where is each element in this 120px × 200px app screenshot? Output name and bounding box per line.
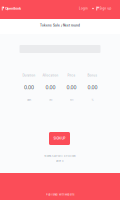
staticText: Tokens Sale / Next round — [40, 24, 80, 27]
staticText: % — [91, 99, 93, 101]
staticText: tkn — [49, 99, 52, 101]
staticText: SIGN UP — [53, 137, 65, 140]
button[interactable]: Menu — [91, 6, 95, 11]
staticText: Allocation — [42, 74, 58, 77]
button[interactable]: Sign up — [95, 5, 113, 12]
staticText: Duration — [22, 74, 35, 77]
staticText: 0.00 — [45, 85, 55, 90]
staticText: Openthink — [5, 7, 21, 10]
button[interactable]: SIGN UP — [49, 132, 70, 145]
button[interactable]: Login — [77, 5, 89, 12]
staticText: Published with website — [46, 193, 74, 196]
staticText: after 0 — [56, 159, 64, 163]
button[interactable]: Openthink — [0, 3, 23, 13]
staticText: Bonus — [87, 74, 97, 77]
staticText: 0.00 — [87, 85, 97, 90]
staticText: Price — [67, 74, 75, 77]
staticText: Tokens Sale will be closed — [44, 154, 76, 158]
staticText: eth — [70, 99, 73, 101]
staticText: Login — [79, 7, 88, 10]
staticText: 0.00 — [24, 85, 34, 90]
staticText: days — [27, 99, 31, 101]
staticText: Sign up — [100, 7, 112, 10]
staticText: 0.00 — [66, 85, 76, 90]
